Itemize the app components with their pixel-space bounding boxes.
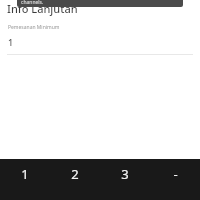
button[interactable]: 3 [100,159,150,200]
staticText: 3 [121,165,129,183]
staticText: - [173,165,178,183]
staticText: Info Lanjutan [7,1,78,16]
button[interactable]: 1 [0,159,50,200]
button[interactable]: 1 [0,35,200,54]
staticText: 2 [71,165,79,183]
staticText: channels. [21,0,44,6]
staticText: 1 [8,36,14,48]
staticText: 1 [21,165,29,183]
button[interactable]: 2 [50,159,100,200]
button[interactable]: Minus [150,159,200,200]
staticText: Pemesanan Minimum [8,24,60,31]
